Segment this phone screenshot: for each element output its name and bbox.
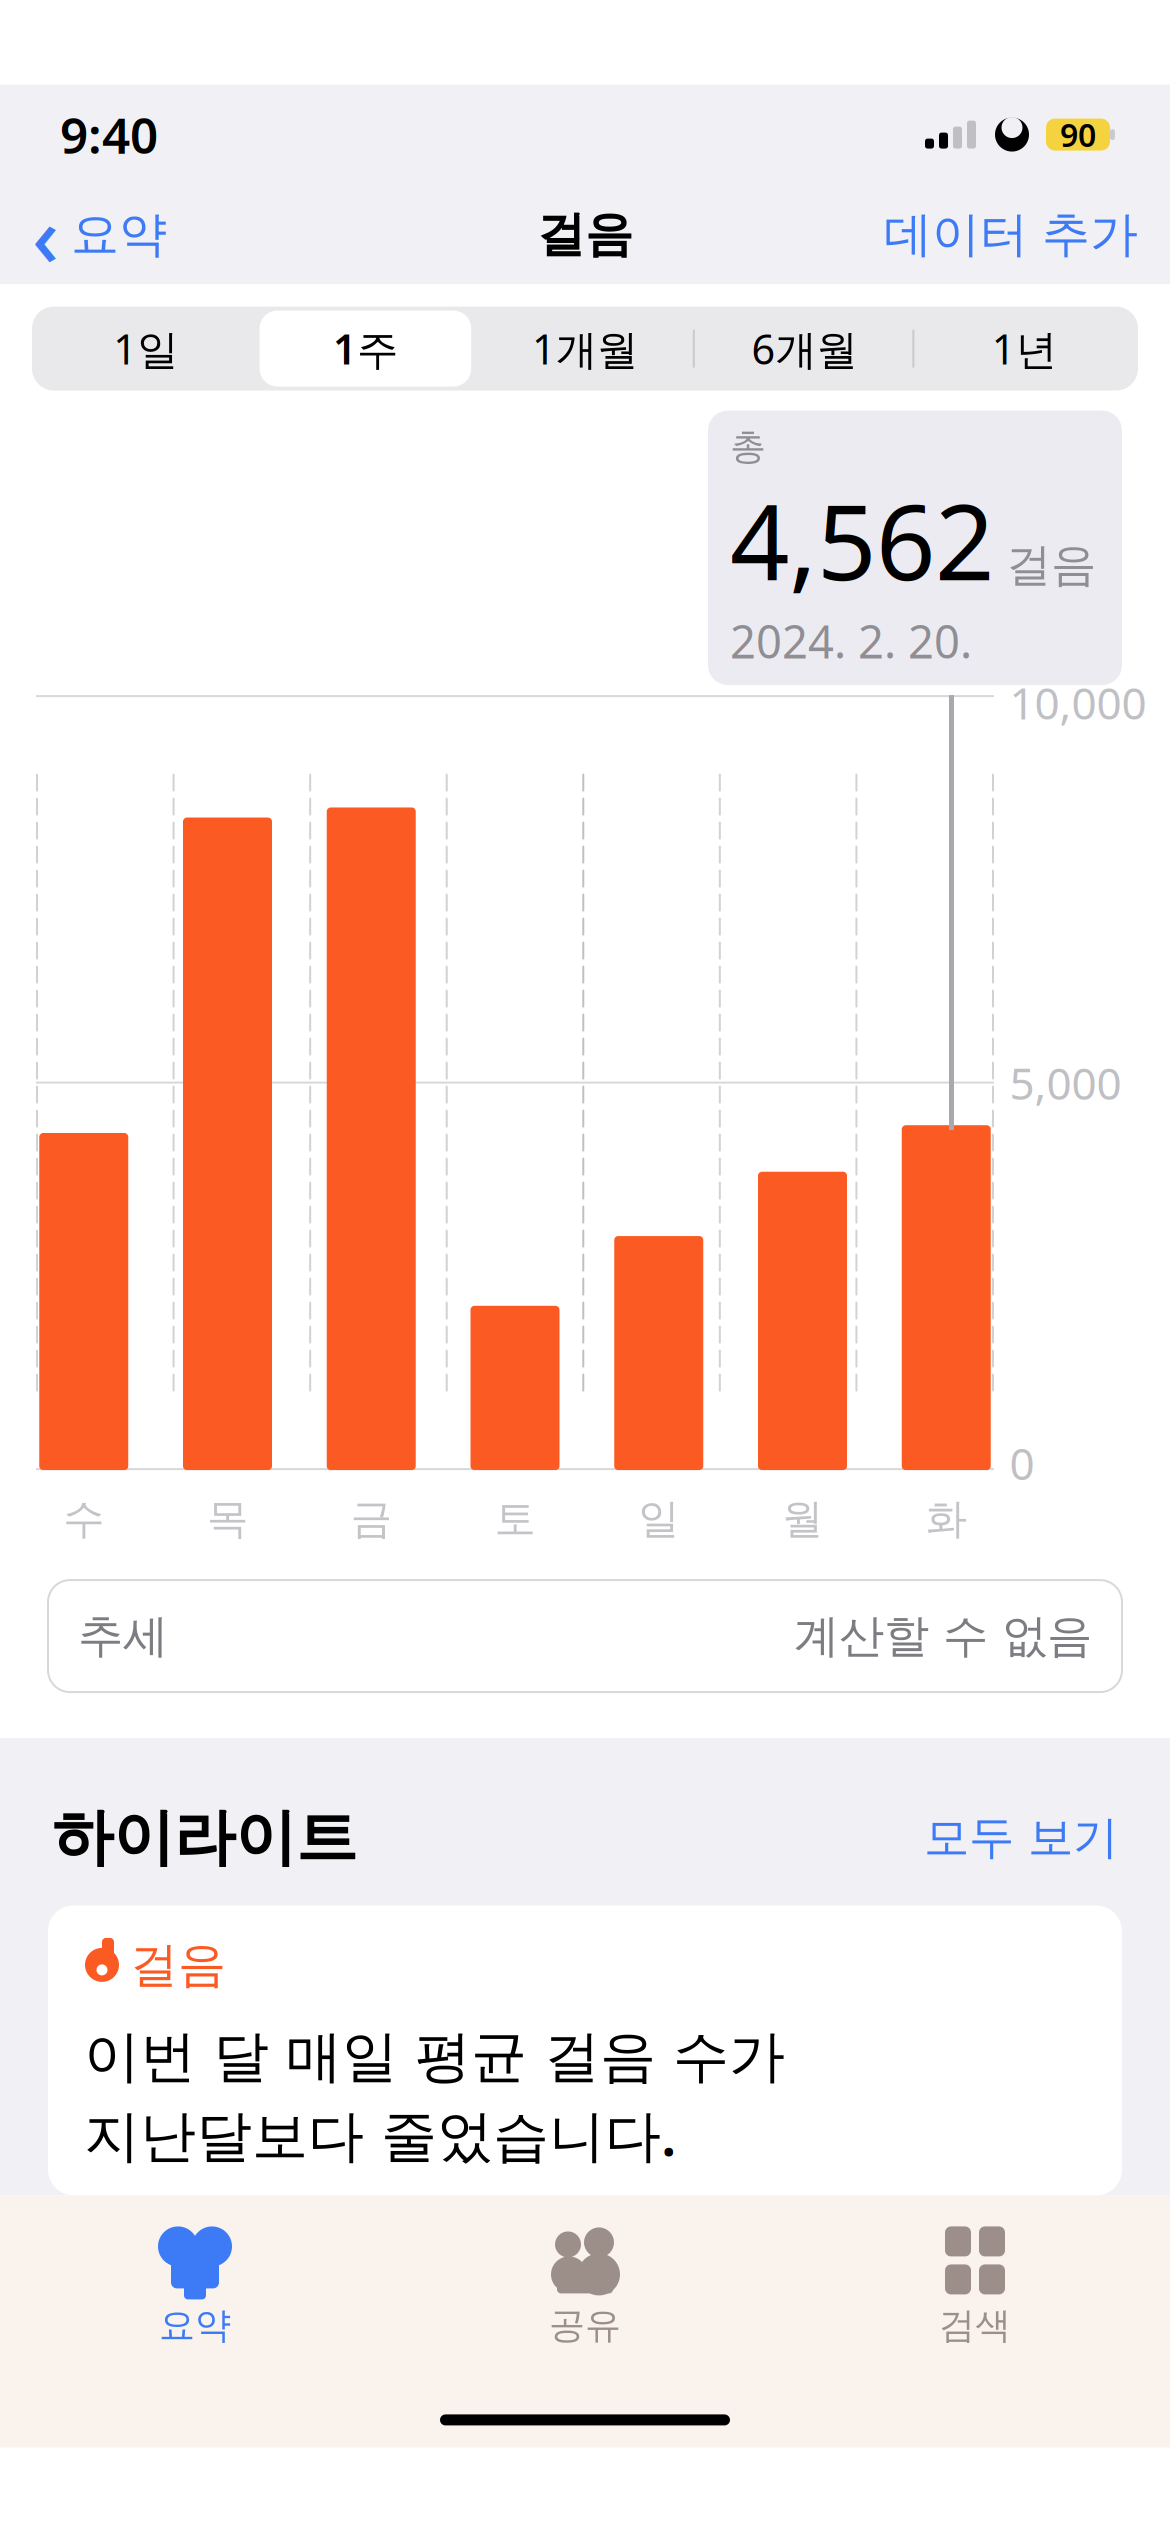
button[interactable]: 1주 (256, 307, 475, 391)
button[interactable]: 1년 (914, 307, 1134, 391)
staticText: 월 (782, 1494, 823, 1544)
staticText: 10,000 (1009, 673, 1146, 731)
staticText: 지난달보다 줄었습니다. (84, 2097, 676, 2172)
staticText: 1주 (333, 321, 398, 376)
staticText: 걸음 (130, 1935, 226, 1994)
staticText: 4,562 (730, 471, 994, 609)
staticText: 일 (638, 1494, 679, 1544)
button[interactable]: 검색 (780, 2219, 1170, 2356)
button[interactable]: 모두 보기 (910, 1802, 1118, 1874)
staticText: 이번 달 매일 평균 걸음 수가 (84, 2022, 785, 2091)
button[interactable]: 공유 (390, 2219, 780, 2356)
staticText: 0 (1009, 1434, 1034, 1492)
staticText: 6개월 (752, 321, 858, 376)
staticText: 5,000 (1009, 1053, 1121, 1112)
button[interactable]: 1개월 (475, 307, 695, 391)
button[interactable]: 6개월 (695, 307, 914, 391)
staticText: ‹ (32, 180, 59, 289)
staticText: 추세 (78, 1608, 168, 1664)
button[interactable]: 추세 (48, 1580, 1122, 1692)
staticText: 토 (494, 1494, 535, 1544)
button[interactable]: 데이터 추가 (872, 195, 1138, 274)
staticText: 1일 (113, 321, 178, 376)
staticText: 총 (730, 425, 766, 469)
button[interactable]: 1일 (36, 307, 256, 391)
button[interactable]: ‹ (32, 170, 179, 299)
staticText: 모두 보기 (924, 1810, 1118, 1866)
staticText: 하이라이트 (52, 1800, 357, 1875)
staticText: 계산할 수 없음 (794, 1608, 1092, 1664)
staticText: 데이터 추가 (884, 205, 1138, 264)
staticText: 9:40 (60, 102, 158, 167)
button[interactable]: 요약 (0, 2219, 390, 2356)
staticText: 목 (207, 1494, 248, 1544)
staticText: 공유 (549, 2303, 621, 2348)
staticText: 검색 (939, 2303, 1011, 2348)
staticText: 90 (1060, 113, 1096, 156)
staticText: 1개월 (532, 321, 638, 376)
staticText: 요약 (159, 2303, 231, 2348)
staticText: 화 (926, 1494, 967, 1544)
staticText: 걸음 (537, 205, 633, 264)
staticText: 수 (63, 1494, 104, 1544)
staticText: 요약 (71, 205, 167, 264)
button[interactable]: 걸음 (48, 1905, 1122, 2195)
staticText: 1년 (992, 321, 1057, 376)
staticText: 2024. 2. 20. (730, 611, 972, 671)
staticText: 걸음 (1006, 537, 1096, 593)
staticText: 금 (351, 1494, 392, 1544)
